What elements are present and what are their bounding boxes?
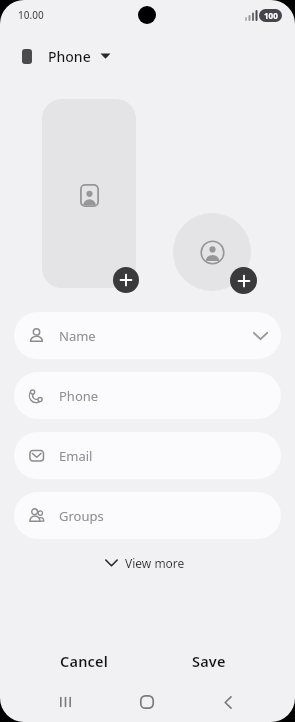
staticText: Email (59, 447, 93, 465)
button[interactable] (173, 213, 251, 291)
button[interactable] (42, 99, 136, 288)
staticText: Groups (59, 507, 104, 525)
button[interactable]: Phone (14, 42, 111, 70)
button[interactable] (113, 267, 139, 293)
button[interactable]: Name (14, 312, 281, 359)
button[interactable]: Cancel (44, 645, 124, 677)
button[interactable]: Save (169, 645, 249, 677)
staticText: Save (192, 651, 226, 671)
staticText: 100 (264, 10, 278, 21)
staticText: 10.00 (18, 8, 44, 22)
button[interactable]: Groups (14, 492, 281, 539)
button[interactable] (208, 682, 248, 722)
staticText: Cancel (60, 651, 109, 671)
button[interactable] (127, 682, 167, 722)
button[interactable]: View more (105, 553, 185, 573)
staticText: Phone (48, 47, 91, 66)
staticText: View more (125, 555, 185, 571)
staticText: Phone (59, 387, 99, 405)
staticText: Name (59, 327, 96, 345)
button[interactable]: Phone (14, 372, 281, 419)
button[interactable]: Email (14, 432, 281, 479)
button[interactable] (230, 267, 257, 294)
button[interactable] (45, 682, 85, 722)
